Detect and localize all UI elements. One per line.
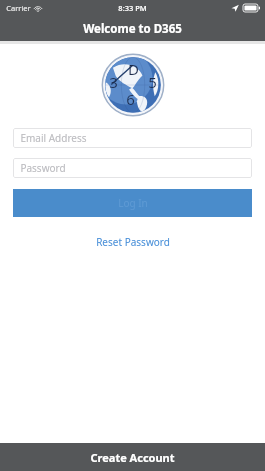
button[interactable]: Email Address [13,128,252,148]
button[interactable]: Password [13,158,252,178]
staticText: Welcome to D365 [83,21,182,37]
staticText: 6 [126,89,135,109]
staticText: 3 [109,72,118,92]
staticText: D [128,59,139,79]
staticText: Email Address [20,131,87,145]
staticText: Create Account [90,450,175,465]
staticText: 5 [148,72,157,92]
staticText: 8:33 PM [118,3,147,13]
staticText: Log In [118,196,148,210]
staticText: Password [20,161,66,175]
button[interactable]: Reset Password [86,232,180,252]
staticText: Reset Password [96,235,170,249]
staticText: Carrier [6,3,31,13]
button[interactable]: Create Account [0,443,265,471]
